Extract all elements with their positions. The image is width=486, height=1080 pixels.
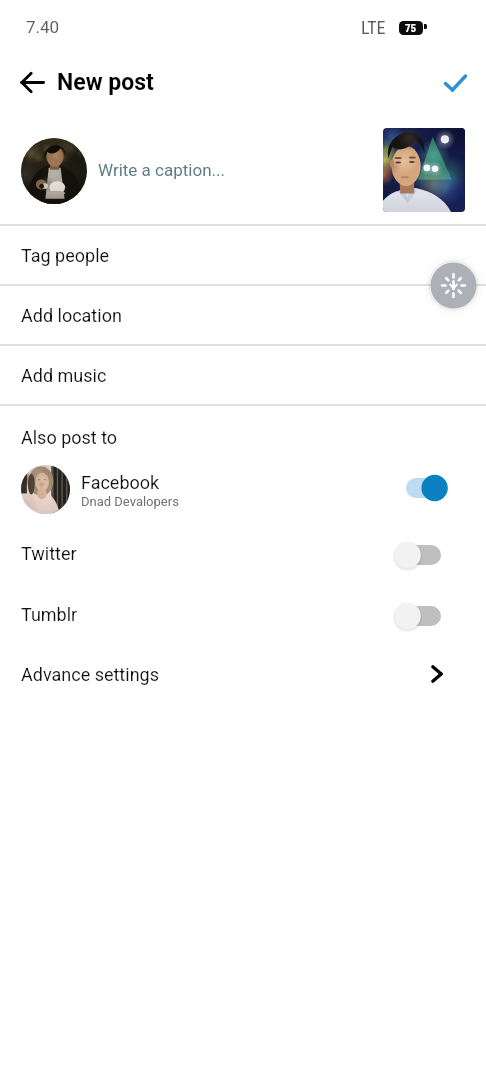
- staticText: Facebook: [81, 472, 160, 493]
- button[interactable]: Screen brightness: [420, 252, 486, 319]
- staticText: Advance settings: [21, 664, 159, 685]
- button[interactable]: Add location: [0, 284, 486, 344]
- staticText: Also post to: [21, 427, 118, 448]
- button[interactable]: Twitter: [0, 524, 486, 585]
- button[interactable]: Add music: [0, 344, 486, 404]
- staticText: Twitter: [21, 543, 77, 564]
- staticText: Write a caption...: [98, 160, 225, 180]
- staticText: Add music: [21, 365, 107, 386]
- button[interactable]: Tumblr: [0, 585, 486, 646]
- button[interactable]: Facebook: [0, 463, 486, 524]
- staticText: 7.40: [26, 17, 60, 37]
- staticText: Dnad Devalopers: [81, 494, 179, 509]
- staticText: Tumblr: [21, 604, 78, 625]
- button[interactable]: Post: [433, 61, 477, 105]
- button[interactable]: Tag people: [0, 224, 486, 284]
- staticText: Tag people: [21, 245, 110, 266]
- button[interactable]: Back: [9, 59, 55, 105]
- staticText: New post: [57, 69, 154, 96]
- button[interactable]: Advance settings: [0, 646, 486, 702]
- staticText: 75: [405, 22, 417, 35]
- staticText: Add location: [21, 305, 122, 326]
- button[interactable]: [0, 110, 486, 224]
- staticText: LTE: [361, 17, 386, 38]
